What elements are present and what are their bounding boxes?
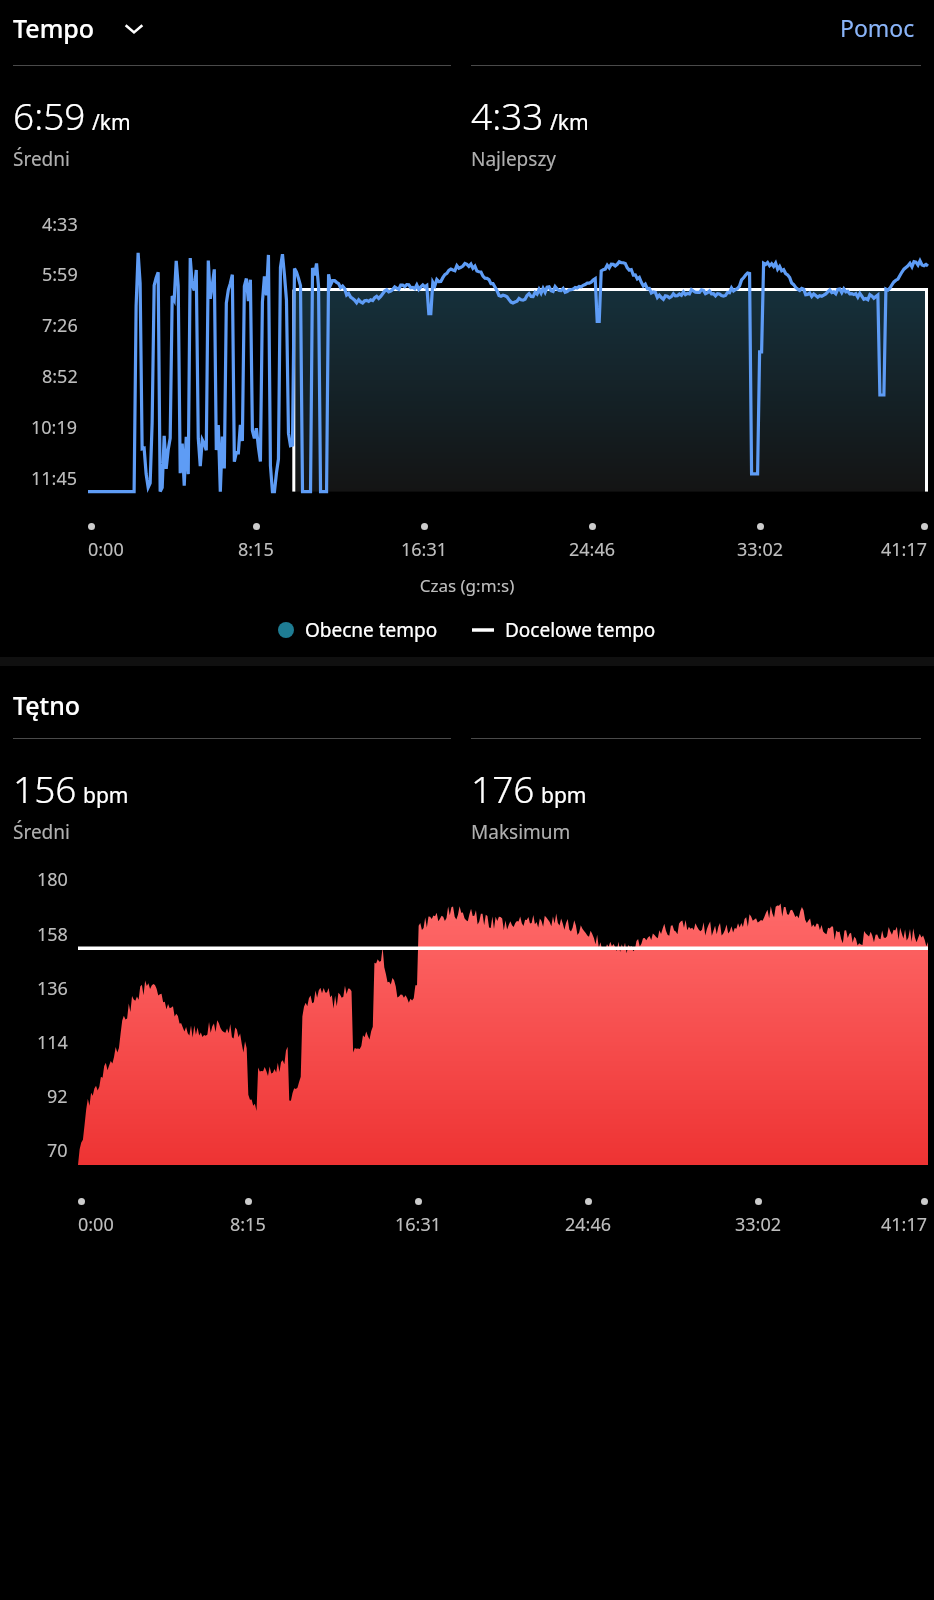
staticText: 136 — [37, 976, 68, 1001]
staticText: 10:19 — [31, 415, 78, 440]
staticText: bpm — [83, 781, 129, 810]
staticText: 7:26 — [42, 313, 78, 338]
staticText: 180 — [37, 867, 68, 892]
staticText: /km — [92, 108, 131, 137]
staticText: 11:45 — [31, 466, 78, 491]
staticText: 33:02 — [735, 1212, 782, 1237]
staticText: 24:46 — [565, 1212, 612, 1237]
button[interactable]: Pomoc — [834, 6, 921, 49]
staticText: 41:17 — [881, 537, 928, 562]
staticText: 16:31 — [401, 537, 448, 562]
staticText: Najlepszy — [471, 146, 557, 172]
staticText: Średni — [13, 146, 70, 172]
staticText: 70 — [47, 1138, 68, 1163]
staticText: Czas (g:m:s) — [0, 574, 934, 597]
staticText: 114 — [37, 1030, 68, 1055]
staticText: 8:15 — [230, 1212, 266, 1237]
staticText: Maksimum — [471, 819, 571, 845]
staticText: Pomoc — [840, 12, 915, 43]
staticText: 24:46 — [569, 537, 616, 562]
staticText: Obecne tempo — [305, 617, 438, 643]
staticText: 6:59 — [13, 90, 86, 140]
staticText: Tempo — [13, 11, 95, 45]
staticText: Docelowe tempo — [505, 617, 656, 643]
staticText: 158 — [37, 922, 68, 947]
staticText: 4:33 — [42, 212, 78, 237]
staticText: 16:31 — [395, 1212, 442, 1237]
staticText: bpm — [541, 781, 587, 810]
staticText: /km — [550, 108, 589, 137]
staticText: 0:00 — [88, 537, 124, 562]
staticText: 92 — [47, 1084, 68, 1109]
staticText: 8:15 — [238, 537, 274, 562]
staticText: 176 — [471, 763, 535, 813]
staticText: 4:33 — [471, 90, 544, 140]
staticText: 156 — [13, 763, 77, 813]
staticText: Średni — [13, 819, 70, 845]
staticText: 0:00 — [78, 1212, 114, 1237]
staticText: 8:52 — [42, 364, 78, 389]
staticText: Tętno — [13, 688, 81, 722]
staticText: 5:59 — [42, 262, 78, 287]
button[interactable]: Rozwiń — [117, 11, 151, 45]
staticText: 41:17 — [881, 1212, 928, 1237]
staticText: 33:02 — [737, 537, 784, 562]
